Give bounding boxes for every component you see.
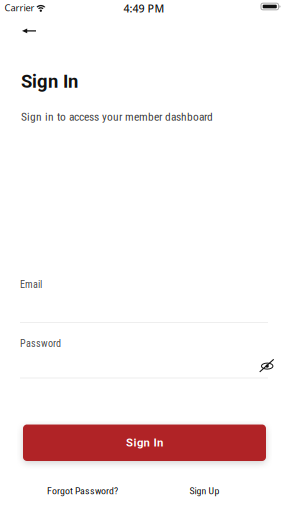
staticText: Carrier (4, 1, 34, 14)
staticText: Sign In (126, 436, 163, 449)
button[interactable]: Sign Up (144, 484, 265, 498)
button[interactable]: Password (20, 337, 268, 378)
button[interactable]: Sign In (23, 424, 266, 461)
button[interactable]: Email (20, 278, 268, 323)
button[interactable]: Back (14, 20, 44, 42)
staticText: Forgot Password? (47, 485, 118, 497)
staticText: Sign In (21, 71, 78, 92)
staticText: Sign in to access your member dashboard (21, 110, 213, 123)
staticText: Sign Up (189, 485, 219, 497)
button[interactable]: Forgot Password? (22, 484, 143, 498)
staticText: 4:49 PM (123, 1, 164, 15)
staticText: Email (20, 278, 42, 290)
button[interactable]: Show password (255, 355, 279, 377)
staticText: Password (20, 337, 61, 349)
